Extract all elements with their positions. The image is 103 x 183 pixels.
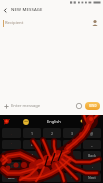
button[interactable]: ABC (2, 173, 21, 182)
button[interactable]: 3 (63, 128, 81, 138)
button[interactable] (78, 117, 86, 125)
staticText: Back (88, 153, 96, 158)
button[interactable]: Recipient (0, 15, 103, 31)
button[interactable]: _ (83, 140, 101, 149)
button[interactable] (43, 173, 61, 182)
button[interactable]: 2 (43, 128, 61, 138)
staticText: SEND (89, 104, 97, 108)
button[interactable] (2, 7, 9, 14)
staticText: 2 (51, 131, 54, 136)
button[interactable] (2, 117, 11, 126)
button[interactable]: ? (2, 162, 21, 171)
staticText: 3 (71, 131, 74, 136)
button[interactable]: 0 (43, 162, 61, 171)
staticText: @ (90, 131, 94, 136)
staticText: ABC (8, 175, 15, 180)
button[interactable]: Next (83, 173, 101, 182)
staticText: 7 (31, 153, 34, 158)
staticText: 1 (31, 131, 34, 136)
staticText: Enter message (11, 103, 41, 109)
button[interactable]: @ (83, 128, 101, 138)
staticText: _ (91, 142, 93, 147)
staticText: 5 (51, 142, 54, 147)
staticText: Recipient (5, 20, 24, 26)
button[interactable]: # (23, 173, 41, 182)
staticText: . (92, 164, 93, 169)
button[interactable]: 4 (23, 140, 41, 149)
staticText: 8 (51, 153, 54, 158)
staticText: . (11, 131, 12, 136)
button[interactable] (2, 102, 10, 110)
button[interactable]: 8 (43, 151, 61, 160)
button[interactable] (75, 102, 83, 110)
button[interactable]: 6 (63, 140, 81, 149)
button[interactable]: . (83, 162, 101, 171)
staticText: 0 (51, 164, 54, 169)
button[interactable]: 5 (43, 140, 61, 149)
button[interactable]: * (23, 162, 41, 171)
staticText: # (31, 175, 34, 180)
button[interactable] (90, 18, 100, 28)
button[interactable]: ; (2, 151, 21, 160)
staticText (52, 175, 53, 180)
staticText: # (71, 164, 74, 169)
button[interactable]: Back (83, 151, 101, 160)
staticText: ~ (71, 175, 74, 180)
staticText: ? (11, 164, 13, 169)
staticText: 4 (31, 142, 34, 147)
button[interactable] (21, 117, 30, 126)
staticText: NEW MESSAGE (11, 7, 43, 13)
staticText: 9 (71, 153, 74, 158)
button[interactable]: SEND (85, 102, 100, 110)
staticText: 6 (71, 142, 74, 147)
button[interactable]: ~ (63, 173, 81, 182)
button[interactable]: 1 (23, 128, 41, 138)
staticText: English (47, 119, 61, 124)
staticText: Next (88, 175, 96, 180)
button[interactable]: 7 (23, 151, 41, 160)
staticText: ' (11, 142, 12, 147)
staticText: * (31, 164, 33, 169)
button[interactable]: # (63, 162, 81, 171)
button[interactable]: 9 (63, 151, 81, 160)
staticText: ; (11, 153, 12, 158)
